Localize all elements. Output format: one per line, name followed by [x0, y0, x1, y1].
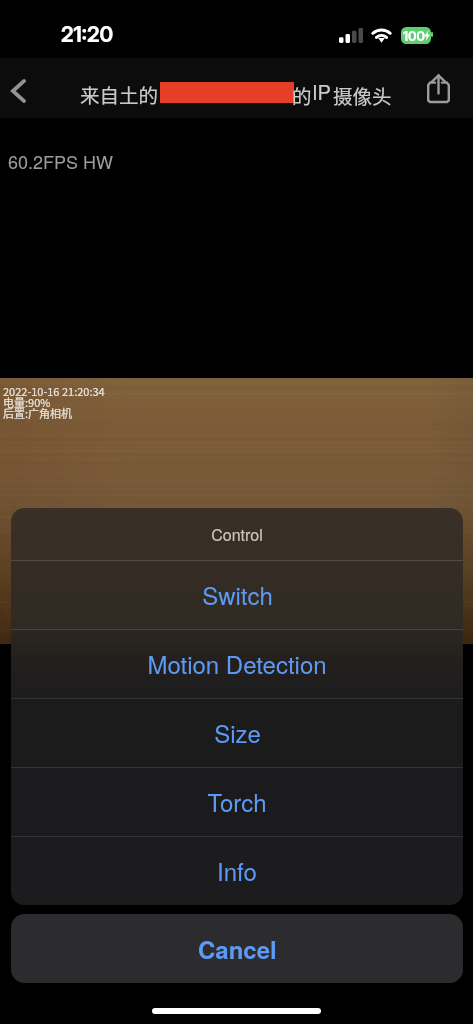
- button[interactable]: Switch: [11, 561, 463, 629]
- staticText: 摄像头: [333, 81, 392, 109]
- button[interactable]: Info: [11, 837, 463, 905]
- staticText: Info: [217, 853, 257, 887]
- button[interactable]: Cancel: [11, 914, 463, 983]
- button[interactable]: Share: [415, 66, 461, 110]
- staticText: 2022-10-16 21:20:34: [3, 383, 105, 399]
- staticText: 后置:广角相机: [3, 405, 73, 421]
- staticText: 21:20: [61, 22, 114, 47]
- staticText: Motion Detection: [147, 646, 327, 680]
- button[interactable]: Back: [0, 66, 44, 110]
- staticText: Switch: [202, 577, 273, 611]
- button[interactable]: Size: [11, 699, 463, 767]
- staticText: 100: [403, 28, 425, 44]
- button[interactable]: Torch: [11, 768, 463, 836]
- staticText: Control: [211, 523, 263, 546]
- staticText: 来自土的: [80, 80, 159, 108]
- staticText: 电量:90%: [3, 394, 51, 410]
- staticText: Torch: [207, 784, 267, 818]
- button[interactable]: Motion Detection: [11, 630, 463, 698]
- staticText: Cancel: [198, 932, 277, 966]
- staticText: 60.2FPS HW: [8, 148, 114, 174]
- staticText: Size: [214, 715, 261, 749]
- staticText: IP: [312, 77, 331, 106]
- staticText: 的: [292, 81, 312, 109]
- button[interactable]: Control: [11, 508, 463, 560]
